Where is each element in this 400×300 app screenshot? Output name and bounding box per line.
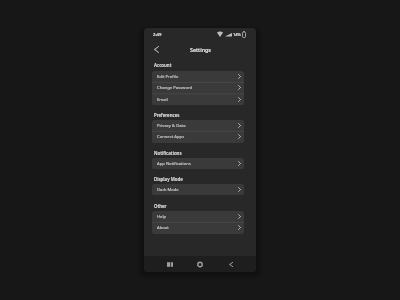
button[interactable]: Home — [194, 258, 206, 270]
button[interactable]: Change Password — [152, 82, 244, 93]
staticText: Notifications — [154, 150, 182, 156]
button[interactable]: Back — [150, 43, 162, 55]
staticText: Edit Profile — [157, 74, 179, 80]
staticText: Display Mode — [154, 176, 183, 182]
staticText: Account — [154, 62, 172, 68]
button[interactable]: Help — [152, 211, 244, 222]
button[interactable]: Dark Mode — [152, 184, 244, 195]
button[interactable]: Recents — [164, 258, 176, 270]
button[interactable]: Edit Profile — [152, 71, 244, 82]
staticText: Dark Mode — [157, 187, 179, 193]
staticText: 2:49 — [153, 32, 162, 38]
staticText: About — [157, 225, 169, 231]
staticText: 14% — [233, 32, 241, 37]
staticText: Change Password — [157, 85, 193, 91]
button[interactable]: About — [152, 222, 244, 233]
staticText: Other — [154, 203, 167, 209]
button[interactable]: App Notifications — [152, 158, 244, 169]
staticText: Connect Apps — [157, 134, 185, 140]
staticText: Privacy & Data — [157, 123, 186, 129]
staticText: Help — [157, 214, 167, 220]
staticText: Email — [157, 97, 168, 103]
staticText: App Notifications — [157, 161, 191, 167]
staticText: Preferences — [154, 112, 180, 118]
button[interactable]: Email — [152, 94, 244, 105]
staticText: Settings — [190, 46, 211, 53]
button[interactable]: Back — [225, 258, 237, 270]
button[interactable]: Privacy & Data — [152, 120, 244, 131]
button[interactable]: Connect Apps — [152, 131, 244, 142]
